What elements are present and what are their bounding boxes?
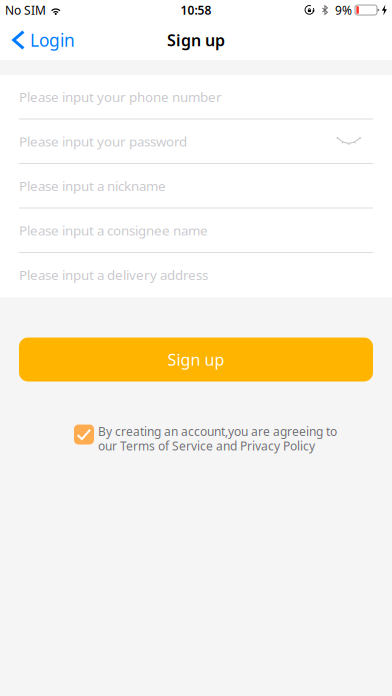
staticText: Sign up bbox=[167, 349, 224, 370]
staticText: Please input your password bbox=[19, 132, 187, 150]
staticText: No SIM bbox=[5, 2, 46, 18]
staticText: 9% bbox=[335, 2, 352, 18]
staticText: Sign up bbox=[167, 29, 225, 51]
staticText: Login bbox=[30, 28, 75, 51]
staticText: 10:58 bbox=[180, 2, 211, 18]
staticText: By creating an account,you are agreeing … bbox=[98, 423, 337, 439]
button[interactable]: By creating an account,you are agreeing … bbox=[74, 423, 337, 454]
staticText: Please input a nickname bbox=[19, 177, 166, 195]
staticText: Please input a consignee name bbox=[19, 221, 208, 239]
button[interactable]: Sign up bbox=[19, 337, 373, 381]
button[interactable]: Login bbox=[0, 22, 85, 57]
staticText: our Terms of Service and Privacy Policy bbox=[98, 438, 315, 454]
staticText: Please input your phone number bbox=[19, 88, 222, 106]
staticText: Please input a delivery address bbox=[19, 266, 208, 284]
button[interactable]: Show password bbox=[326, 127, 392, 156]
